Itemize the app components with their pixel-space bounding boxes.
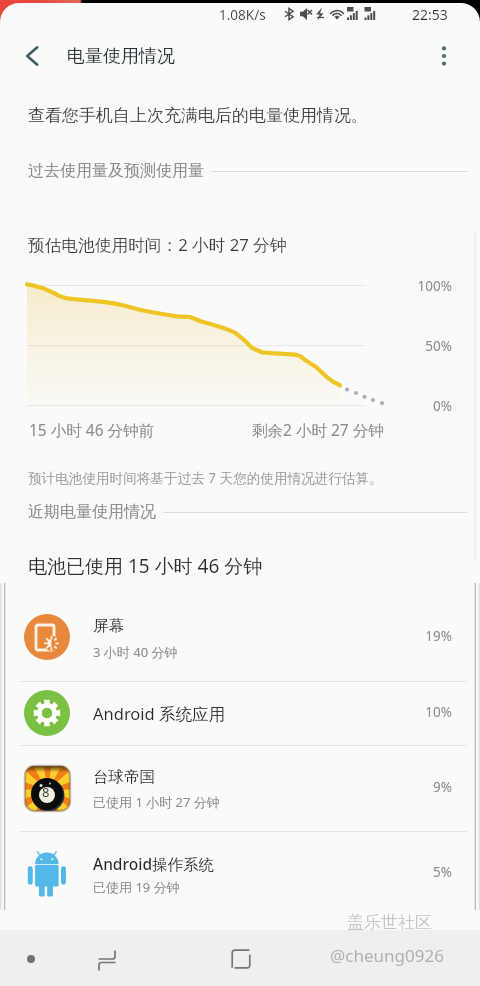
staticText: 3 小时 40 分钟	[93, 643, 178, 661]
staticText: 100%	[404, 277, 452, 295]
staticText: 盖乐世社区	[347, 912, 432, 933]
staticText: 台球帝国	[93, 767, 155, 787]
staticText: 0%	[404, 397, 452, 415]
button[interactable]: Android操作系统	[0, 836, 480, 910]
button[interactable]: More options	[424, 36, 464, 76]
staticText: 屏幕	[93, 616, 124, 636]
staticText: 已使用 1 小时 27 分钟	[93, 793, 220, 811]
button[interactable]: Recent apps	[83, 935, 131, 983]
staticText: 50%	[404, 337, 452, 355]
staticText: 已使用 19 分钟	[93, 878, 180, 896]
staticText: 10%	[400, 703, 452, 721]
staticText: Android 系统应用	[93, 702, 226, 725]
button[interactable]: 屏幕	[0, 600, 480, 674]
staticText: 过去使用量及预测使用量	[28, 161, 204, 181]
button[interactable]: 8	[0, 751, 480, 825]
staticText: 19%	[400, 627, 452, 645]
staticText: @cheung0926	[330, 944, 444, 967]
staticText: 电池已使用 15 小时 46 分钟	[28, 553, 263, 579]
staticText: 9%	[400, 778, 452, 796]
staticText: 8	[42, 783, 50, 801]
staticText: 预计电池使用时间将基于过去 7 天您的使用情况进行估算。	[28, 468, 383, 487]
staticText: 5%	[400, 863, 452, 881]
staticText: 15 小时 46 分钟前	[29, 419, 155, 440]
button[interactable]: Android 系统应用	[0, 676, 480, 750]
staticText: 22:53	[412, 5, 448, 24]
staticText: 预估电池使用时间：2 小时 27 分钟	[28, 233, 287, 256]
button[interactable]: Recents	[7, 935, 55, 983]
staticText: 查看您手机自上次充满电后的电量使用情况。	[28, 105, 368, 126]
button[interactable]: Back	[217, 935, 265, 983]
staticText: 1.08K/s	[219, 6, 266, 24]
staticText: Android操作系统	[93, 853, 214, 874]
staticText: 电量使用情况	[67, 45, 175, 68]
staticText: 剩余2 小时 27 分钟	[252, 419, 384, 440]
staticText: 近期电量使用情况	[28, 502, 156, 522]
button[interactable]: Back	[10, 34, 54, 78]
